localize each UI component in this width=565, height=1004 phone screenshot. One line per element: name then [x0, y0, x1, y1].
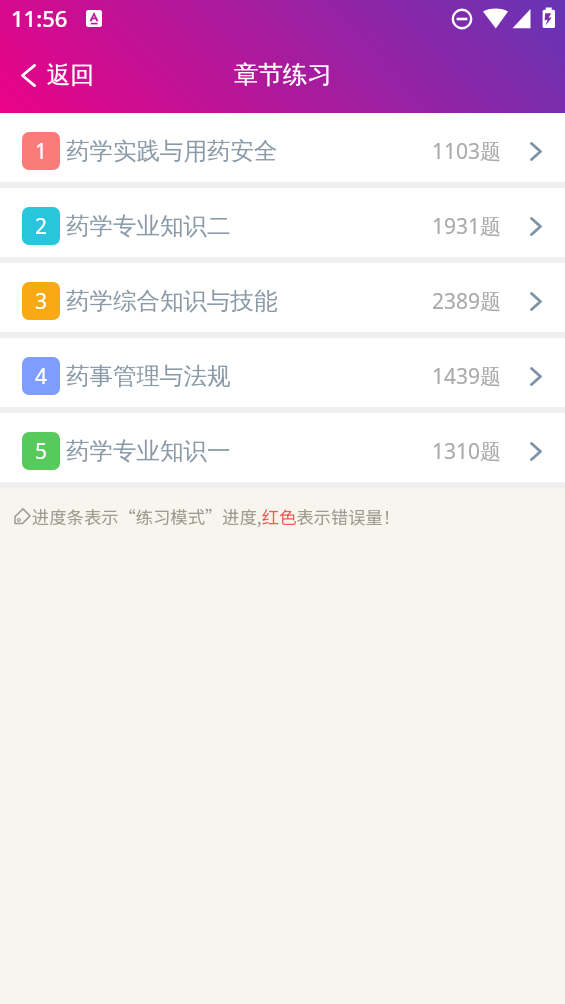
staticText: 4	[35, 362, 48, 391]
button[interactable]: 5	[0, 413, 565, 482]
staticText: 返回	[47, 60, 94, 90]
staticText: 2389题	[432, 287, 502, 316]
staticText: 5	[35, 437, 48, 466]
staticText: 3	[35, 287, 48, 316]
staticText: 药学专业知识一	[66, 436, 231, 466]
staticText: 章节练习	[234, 59, 332, 90]
staticText: 1103题	[432, 137, 502, 166]
staticText: 进度条表示“练习模式”进度,红色表示错误量！	[32, 504, 401, 529]
staticText: 药事管理与法规	[66, 361, 231, 391]
staticText: 药学综合知识与技能	[66, 286, 278, 316]
staticText: 11:56	[11, 3, 68, 33]
button[interactable]: 4	[0, 338, 565, 407]
staticText: 1931题	[432, 212, 502, 241]
button[interactable]: 3	[0, 263, 565, 332]
button[interactable]: 1	[0, 113, 565, 182]
other: Do not disturb, Wi-Fi, signal, battery	[450, 7, 560, 29]
staticText: 1	[35, 137, 48, 166]
other: App indicator	[86, 10, 102, 27]
button[interactable]: 2	[0, 188, 565, 257]
staticText: 2	[35, 212, 48, 241]
staticText: 药学专业知识二	[66, 211, 231, 241]
button[interactable]: 返回	[0, 48, 108, 102]
staticText: 1439题	[432, 362, 502, 391]
staticText: 1310题	[432, 437, 502, 466]
staticText: 药学实践与用药安全	[66, 136, 278, 166]
